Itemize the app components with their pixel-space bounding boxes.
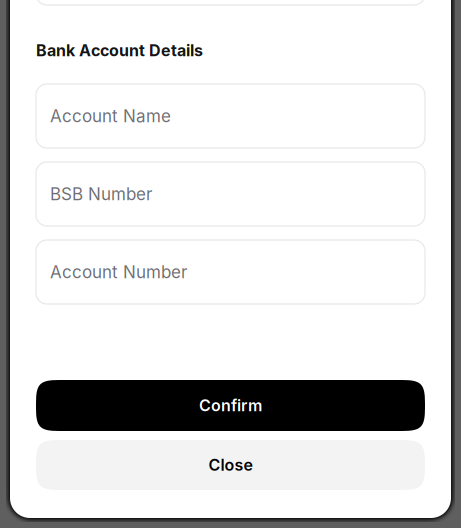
button[interactable]: Account Number — [36, 240, 425, 304]
staticText: Close — [208, 455, 252, 475]
staticText: Bank Account Details — [36, 41, 203, 60]
button[interactable]: BSB Number — [36, 162, 425, 226]
staticText: BSB Number — [50, 184, 152, 204]
button[interactable]: Account Name — [36, 84, 425, 148]
staticText: Account Number — [50, 262, 187, 282]
button[interactable]: Close — [36, 440, 425, 490]
staticText: Account Name — [50, 106, 171, 126]
button[interactable]: Confirm — [36, 380, 425, 431]
staticText: Confirm — [199, 396, 262, 415]
